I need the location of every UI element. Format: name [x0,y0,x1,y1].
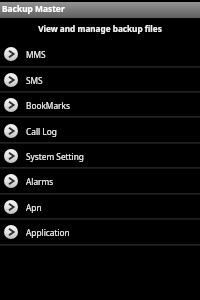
staticText: SMS [26,75,43,86]
staticText: Backup Master [2,3,65,14]
staticText: System Setting [26,151,84,162]
staticText: MMS [26,49,46,60]
staticText: Call Log [26,126,57,137]
staticText: Application [26,227,70,238]
staticText: Alarms [26,176,54,187]
button[interactable]: MMS [0,41,200,66]
button[interactable]: SMS [0,67,200,92]
staticText: BookMarks [26,100,70,111]
button[interactable]: Call Log [0,118,200,143]
staticText: View and manage backup files [38,23,162,34]
staticText: Apn [26,202,42,213]
button[interactable]: Apn [0,194,200,219]
button[interactable]: Application [0,219,200,244]
button[interactable]: System Setting [0,143,200,168]
button[interactable]: Alarms [0,168,200,193]
button[interactable]: BookMarks [0,92,200,117]
